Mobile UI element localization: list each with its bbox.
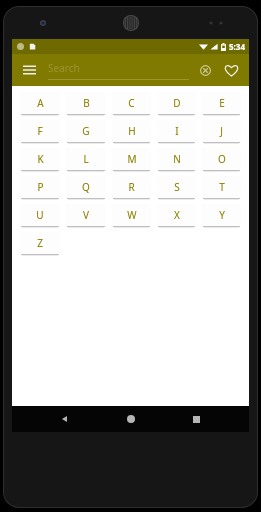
staticText: Y — [219, 208, 225, 222]
button[interactable]: B — [66, 92, 106, 114]
button[interactable]: C — [112, 92, 151, 114]
button[interactable]: A — [20, 92, 60, 114]
button[interactable]: L — [66, 148, 106, 170]
button[interactable]: R — [112, 176, 151, 198]
button[interactable]: D — [157, 92, 196, 114]
staticText: M — [127, 152, 137, 166]
staticText: T — [219, 180, 225, 194]
button[interactable]: Y — [202, 204, 241, 226]
button[interactable]: Home — [118, 406, 144, 432]
button[interactable]: Clear search — [193, 58, 217, 82]
button[interactable]: K — [20, 148, 60, 170]
staticText: X — [174, 208, 180, 222]
button[interactable]: Recent apps — [183, 406, 209, 432]
button[interactable]: O — [202, 148, 241, 170]
staticText: Q — [82, 180, 90, 194]
button[interactable]: S — [157, 176, 196, 198]
button[interactable]: Z — [20, 232, 60, 254]
staticText: H — [128, 124, 136, 138]
staticText: E — [219, 96, 225, 110]
button[interactable]: J — [202, 120, 241, 142]
staticText: R — [128, 180, 135, 194]
button[interactable]: M — [112, 148, 151, 170]
staticText: L — [83, 152, 89, 166]
staticText: I — [175, 124, 179, 138]
button[interactable]: U — [20, 204, 60, 226]
button[interactable]: I — [157, 120, 196, 142]
staticText: K — [37, 152, 44, 166]
staticText: V — [83, 208, 89, 222]
staticText: F — [37, 124, 43, 138]
staticText: O — [218, 152, 226, 166]
staticText: U — [36, 208, 44, 222]
staticText: Search — [48, 61, 80, 75]
staticText: A — [37, 96, 44, 110]
staticText: 5:34 — [229, 41, 245, 52]
button[interactable]: H — [112, 120, 151, 142]
button[interactable]: Back — [52, 406, 78, 432]
staticText: S — [174, 180, 180, 194]
button[interactable]: N — [157, 148, 196, 170]
button[interactable]: V — [66, 204, 106, 226]
staticText: C — [128, 96, 135, 110]
button[interactable]: G — [66, 120, 106, 142]
staticText: P — [37, 180, 44, 194]
button[interactable]: F — [20, 120, 60, 142]
button[interactable]: Menu — [18, 59, 40, 81]
staticText: J — [220, 124, 223, 138]
button[interactable]: X — [157, 204, 196, 226]
staticText: B — [83, 96, 90, 110]
button[interactable]: Q — [66, 176, 106, 198]
button[interactable]: T — [202, 176, 241, 198]
staticText: D — [173, 96, 181, 110]
staticText: N — [173, 152, 181, 166]
button[interactable]: P — [20, 176, 60, 198]
button[interactable]: W — [112, 204, 151, 226]
button[interactable]: Search — [48, 61, 189, 80]
button[interactable]: E — [202, 92, 241, 114]
staticText: W — [127, 208, 137, 222]
staticText: Z — [37, 236, 43, 250]
button[interactable]: Favorites — [219, 58, 243, 82]
staticText: G — [82, 124, 90, 138]
